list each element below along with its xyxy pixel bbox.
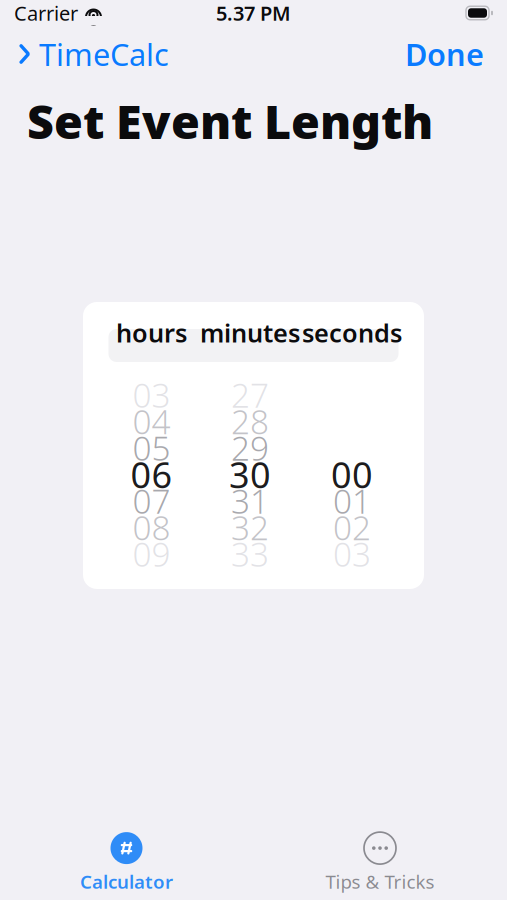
staticText: 03 bbox=[333, 532, 371, 576]
staticText: 27 bbox=[231, 373, 269, 417]
staticText: 32 bbox=[231, 505, 269, 549]
staticText: 08 bbox=[132, 505, 170, 549]
staticText: 00 bbox=[331, 450, 373, 498]
staticText: hours bbox=[116, 316, 187, 350]
staticText: 30 bbox=[229, 450, 271, 498]
staticText: Calculator bbox=[80, 869, 173, 894]
staticText: Set Event Length bbox=[27, 90, 433, 152]
staticText: 28 bbox=[231, 399, 269, 443]
staticText: 03 bbox=[132, 373, 170, 417]
staticText: TimeCalc bbox=[39, 34, 169, 74]
staticText: 5.37 PM bbox=[216, 0, 291, 26]
staticText: Tips & Tricks bbox=[325, 869, 434, 894]
button[interactable]: Done bbox=[395, 29, 507, 79]
button[interactable]: TimeCalc bbox=[0, 29, 177, 79]
staticText: Carrier bbox=[14, 0, 78, 26]
staticText: Done bbox=[405, 34, 484, 74]
staticText: 01 bbox=[333, 479, 371, 523]
staticText: 29 bbox=[231, 426, 269, 470]
staticText: minutes bbox=[200, 316, 300, 350]
button[interactable]: Calculator bbox=[0, 832, 253, 894]
staticText: seconds bbox=[302, 316, 402, 350]
staticText: 04 bbox=[132, 399, 170, 443]
staticText: 06 bbox=[130, 450, 172, 498]
staticText: 07 bbox=[132, 479, 170, 523]
staticText: 05 bbox=[132, 426, 170, 470]
button[interactable]: Tips & Tricks bbox=[253, 832, 507, 894]
staticText: 02 bbox=[333, 505, 371, 549]
staticText: 31 bbox=[231, 479, 269, 523]
staticText: 09 bbox=[132, 532, 170, 576]
staticText: 33 bbox=[231, 532, 269, 576]
